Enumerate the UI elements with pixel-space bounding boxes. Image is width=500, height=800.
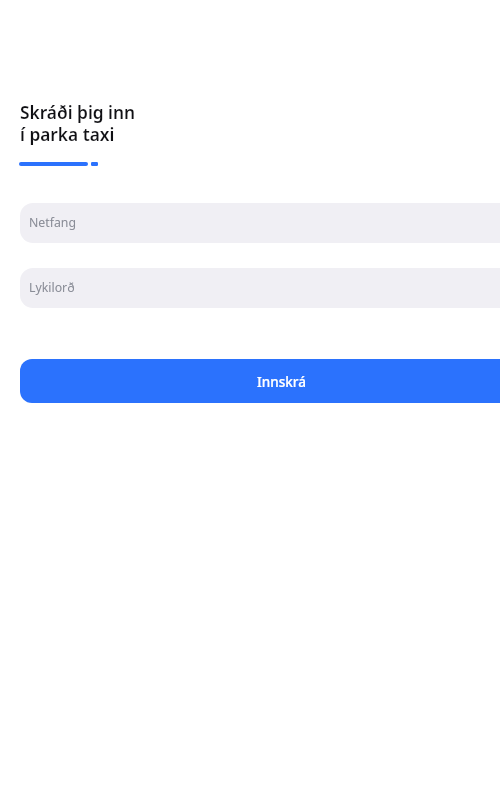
staticText: Netfang [29, 214, 77, 231]
staticText: Skráði þig inn [20, 101, 136, 125]
button[interactable]: Netfang [20, 203, 500, 243]
button[interactable]: Innskrá [20, 359, 500, 403]
staticText: Lykilorð [29, 279, 75, 296]
staticText: Innskrá [20, 373, 500, 391]
button[interactable]: Lykilorð [20, 268, 500, 308]
staticText: í parka taxi [20, 123, 115, 147]
